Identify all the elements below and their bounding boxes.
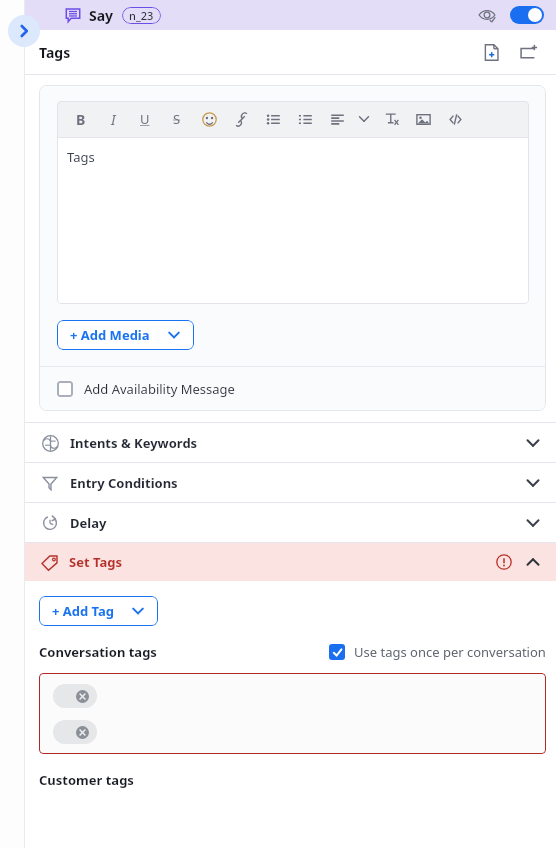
staticText: I xyxy=(111,110,116,129)
staticText: Entry Conditions xyxy=(70,474,178,492)
staticText: Tags xyxy=(39,43,71,62)
button[interactable]: Format xyxy=(257,104,289,134)
button[interactable]: Delay xyxy=(25,503,556,542)
button[interactable]: Enabled toggle xyxy=(510,6,544,24)
staticText: n_23 xyxy=(129,8,154,23)
button[interactable]: Format xyxy=(97,104,129,134)
button[interactable]: + Add Tag xyxy=(39,596,158,626)
staticText: Say xyxy=(89,6,114,25)
button[interactable]: Add file xyxy=(478,39,504,65)
staticText: Intents & Keywords xyxy=(70,434,198,452)
button[interactable]: Format xyxy=(225,104,257,134)
staticText: U xyxy=(140,110,150,128)
button[interactable]: Remove tag xyxy=(53,720,97,744)
button[interactable]: Preview xyxy=(474,2,500,28)
button[interactable]: Format xyxy=(321,104,353,134)
button[interactable]: Format xyxy=(439,104,471,134)
button[interactable]: Intents & Keywords xyxy=(25,423,556,462)
button[interactable]: Set Tags xyxy=(25,543,556,581)
staticText: Conversation tags xyxy=(39,643,157,661)
staticText: + Add Media xyxy=(70,326,150,344)
staticText: + Add Tag xyxy=(52,602,115,620)
staticText: Tags xyxy=(67,148,95,166)
button[interactable]: Remove tag xyxy=(53,684,97,708)
button[interactable]: + Add Media xyxy=(57,320,194,350)
staticText: Set Tags xyxy=(69,553,122,571)
button[interactable]: Format xyxy=(193,104,225,134)
staticText: Use tags once per conversation xyxy=(354,643,546,661)
button[interactable]: Expand panel xyxy=(8,15,40,47)
button[interactable]: Entry Conditions xyxy=(25,463,556,502)
button[interactable]: Format xyxy=(407,104,439,134)
button[interactable]: Add block xyxy=(516,39,542,65)
staticText: B xyxy=(76,110,86,129)
button[interactable]: Format xyxy=(65,104,97,134)
other: Error xyxy=(494,552,514,572)
button[interactable]: Use tags once per conversation xyxy=(329,643,546,661)
button[interactable]: Format xyxy=(289,104,321,134)
button[interactable]: Add Availability Message xyxy=(39,367,546,411)
staticText: Add Availability Message xyxy=(84,380,235,398)
staticText: S xyxy=(173,110,181,128)
button[interactable]: Format xyxy=(129,104,161,134)
staticText: Delay xyxy=(70,514,107,532)
staticText: Customer tags xyxy=(39,771,134,789)
button[interactable]: Format xyxy=(375,104,407,134)
button[interactable]: Format xyxy=(161,104,193,134)
